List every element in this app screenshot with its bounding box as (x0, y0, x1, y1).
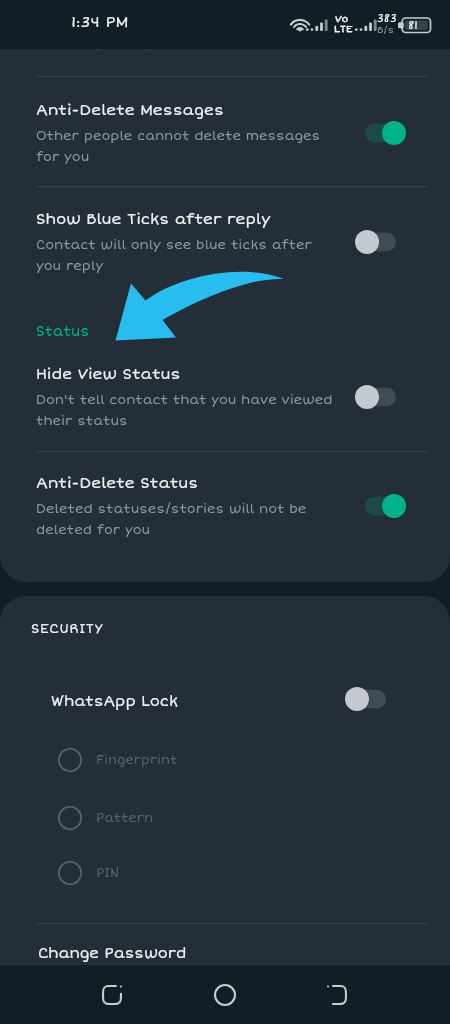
staticText: Show Blue Ticks after reply (36, 210, 271, 229)
button[interactable]: Recents (299, 974, 375, 1016)
button[interactable]: Toggle off (345, 684, 395, 714)
staticText: Change Password (38, 944, 187, 962)
button[interactable]: Toggle on (362, 118, 412, 148)
staticText: Anti-Delete Messages (36, 101, 224, 120)
staticText: Don't tell contact that you have viewed … (36, 392, 337, 429)
staticText: LTE (334, 23, 353, 35)
staticText: Deleted statuses/stories will not be del… (36, 501, 337, 538)
staticText: SECURITY (31, 620, 104, 637)
staticText: Anti-Delete Status (36, 474, 199, 493)
button[interactable]: Anti-Delete Status (0, 474, 450, 538)
button[interactable]: Hide View Status (0, 365, 450, 429)
staticText: Other people cannot delete messages for … (36, 128, 337, 165)
button[interactable]: Toggle on (362, 491, 412, 521)
button[interactable]: Pattern (0, 806, 450, 830)
button[interactable]: PIN (0, 861, 450, 885)
staticText: PIN (96, 865, 119, 881)
staticText: 81 (408, 19, 418, 32)
staticText: Fingerprint (96, 752, 178, 768)
button[interactable]: Home (187, 974, 263, 1016)
staticText: 383 (377, 12, 397, 25)
staticText: Contact will only see blue ticks after y… (36, 237, 337, 274)
button[interactable]: Anti-Delete Messages (0, 101, 450, 165)
button[interactable]: Toggle off (355, 227, 405, 257)
staticText: Pattern (96, 810, 153, 826)
button[interactable]: Toggle off (355, 382, 405, 412)
staticText: B/s (377, 24, 394, 36)
button[interactable]: Show Blue Ticks after reply (0, 210, 450, 274)
staticText: Vo (335, 13, 349, 25)
button[interactable]: WhatsApp Lock (0, 692, 450, 722)
staticText: Hide View Status (36, 365, 181, 384)
button[interactable]: Fingerprint (0, 748, 450, 772)
staticText: WhatsApp Lock (51, 692, 179, 710)
button[interactable]: Back (74, 974, 150, 1016)
staticText: 1:34 PM (71, 13, 129, 32)
staticText: Status (36, 323, 90, 340)
